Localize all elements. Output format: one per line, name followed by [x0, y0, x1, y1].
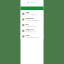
staticText: Sent the files over	[25, 25, 37, 27]
button[interactable]: Maya	[21, 22, 43, 28]
button[interactable]: Liam Carter	[21, 28, 43, 34]
staticText: Maya	[25, 23, 29, 25]
staticText: Catch up tomorrow	[25, 37, 38, 38]
button[interactable]: Noah Reed	[21, 17, 43, 22]
staticText: Liam Carter	[25, 29, 34, 31]
staticText: On my way now	[25, 31, 35, 33]
button[interactable]: Sofia	[21, 34, 43, 39]
staticText: See you at the cafe	[25, 14, 37, 16]
staticText: Amelia	[25, 12, 29, 14]
staticText: Sounds great, thanks	[25, 20, 40, 21]
staticText: Noah Reed	[25, 18, 33, 19]
button[interactable]: Amelia	[21, 11, 43, 17]
staticText: Sofia	[25, 34, 29, 36]
